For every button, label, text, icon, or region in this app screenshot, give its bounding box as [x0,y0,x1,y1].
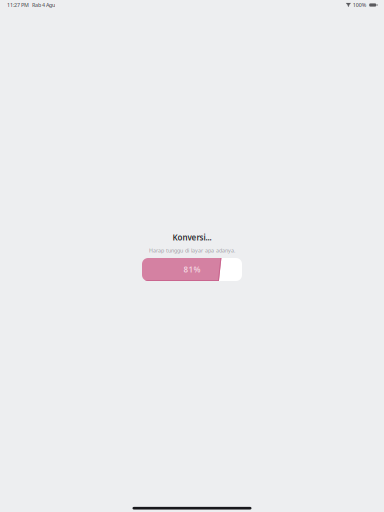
staticText: Rab 4 Agu [32,1,55,9]
staticText: 100% [353,1,367,9]
staticText: 81% [183,264,200,275]
staticText: Konversi... [172,232,211,243]
staticText: Harap tunggu di layar apa adanya. [149,247,235,254]
staticText: 11:27 PM [7,1,29,9]
